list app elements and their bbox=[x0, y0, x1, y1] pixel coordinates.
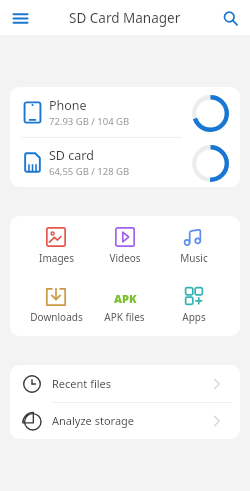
staticText: Analyze storage bbox=[52, 413, 210, 428]
staticText: 72.93 GB / 104 GB bbox=[49, 115, 130, 128]
button[interactable]: Images bbox=[22, 227, 90, 265]
staticText: Videos bbox=[109, 251, 141, 265]
button[interactable]: Apps bbox=[159, 286, 228, 324]
button[interactable]: Downloads bbox=[22, 286, 90, 324]
staticText: Recent files bbox=[52, 376, 210, 391]
button[interactable]: Recent files bbox=[10, 365, 240, 402]
staticText: 64,55 GB / 128 GB bbox=[49, 165, 130, 178]
button[interactable]: APK bbox=[90, 286, 159, 324]
button[interactable]: Music bbox=[159, 227, 228, 265]
staticText: Images bbox=[39, 251, 74, 265]
staticText: Downloads bbox=[30, 310, 83, 324]
button[interactable]: Search bbox=[217, 5, 243, 31]
button[interactable]: Videos bbox=[90, 227, 159, 265]
button[interactable]: Analyze storage bbox=[10, 402, 240, 439]
staticText: Phone bbox=[49, 97, 87, 114]
staticText: APK files bbox=[104, 310, 145, 324]
staticText: APK bbox=[114, 291, 137, 306]
staticText: SD card bbox=[49, 147, 94, 164]
staticText: Apps bbox=[182, 310, 206, 324]
button[interactable]: Open navigation menu bbox=[7, 5, 33, 31]
button[interactable]: Phone bbox=[10, 87, 240, 137]
button[interactable]: SD card bbox=[10, 137, 240, 187]
staticText: Music bbox=[180, 251, 208, 265]
staticText: SD Card Manager bbox=[69, 9, 181, 27]
